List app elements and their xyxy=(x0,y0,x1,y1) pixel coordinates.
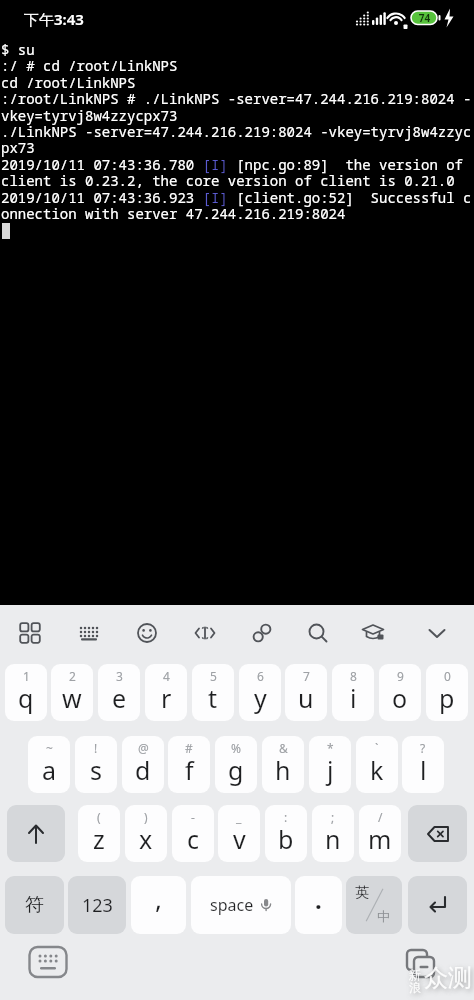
button[interactable] xyxy=(417,613,457,653)
staticText: l xyxy=(420,753,427,787)
staticText: w xyxy=(62,681,82,715)
button[interactable] xyxy=(185,613,225,653)
staticText: space xyxy=(210,894,254,916)
staticText: ! xyxy=(94,740,98,756)
staticText: 4 xyxy=(163,668,170,684)
button[interactable]: 1 xyxy=(5,664,47,721)
button[interactable]: ( xyxy=(78,805,120,862)
button[interactable]: ! xyxy=(75,736,117,793)
staticText: f xyxy=(185,753,194,787)
staticText: : xyxy=(284,809,288,825)
staticText: n xyxy=(325,822,341,856)
staticText: ( xyxy=(97,809,101,825)
staticText: $ su xyxy=(1,40,35,59)
staticText: 2 xyxy=(69,668,76,684)
button[interactable]: 3 xyxy=(98,664,140,721)
staticText: 下午3:43 xyxy=(24,9,84,29)
button[interactable] xyxy=(69,613,109,653)
staticText: 符 xyxy=(25,893,44,917)
staticText: s xyxy=(90,753,102,787)
staticText: 众测 xyxy=(424,963,472,993)
button[interactable]: 7 xyxy=(285,664,327,721)
button[interactable] xyxy=(408,876,467,934)
staticText: x xyxy=(139,822,153,856)
button[interactable] xyxy=(10,613,50,653)
button[interactable]: 2 xyxy=(51,664,93,721)
staticText: ? xyxy=(420,740,426,756)
staticText: · xyxy=(315,889,322,922)
staticText: m xyxy=(368,822,392,856)
button[interactable]: _ xyxy=(218,805,260,862)
staticText: 7 xyxy=(303,668,310,684)
staticText: * xyxy=(327,740,334,756)
button[interactable]: 0 xyxy=(426,664,468,721)
staticText: o xyxy=(392,681,408,715)
button[interactable] xyxy=(127,613,167,653)
button[interactable] xyxy=(28,945,68,979)
button[interactable]: @ xyxy=(122,736,164,793)
staticText: / xyxy=(378,809,383,825)
button[interactable]: space xyxy=(191,876,291,934)
staticText: v xyxy=(233,822,246,856)
button[interactable]: 符 xyxy=(5,876,64,934)
button[interactable] xyxy=(7,805,65,862)
staticText: 6 xyxy=(257,668,264,684)
staticText: :/ # cd /root/LinkNPS xyxy=(1,56,178,75)
staticText: ) xyxy=(144,809,148,825)
button[interactable] xyxy=(298,613,338,653)
button[interactable]: 5 xyxy=(192,664,234,721)
staticText: e xyxy=(112,681,127,715)
staticText: q xyxy=(18,681,34,715)
button[interactable]: ~ xyxy=(28,736,70,793)
button[interactable]: * xyxy=(309,736,351,793)
staticText: z xyxy=(93,822,105,856)
staticText: , xyxy=(155,881,162,916)
button[interactable]: ) xyxy=(125,805,167,862)
staticText: - xyxy=(191,809,195,825)
staticText: 新 xyxy=(409,967,421,982)
staticText: j xyxy=(327,753,334,787)
button[interactable]: : xyxy=(265,805,307,862)
button[interactable]: / xyxy=(359,805,401,862)
button[interactable]: # xyxy=(168,736,210,793)
button[interactable]: ` xyxy=(356,736,398,793)
button[interactable]: % xyxy=(215,736,257,793)
staticText: 2019/10/11 07:43:36.923 [I] [client.go:5… xyxy=(1,188,472,207)
button[interactable]: & xyxy=(262,736,304,793)
button[interactable]: 6 xyxy=(239,664,281,721)
staticText: @ xyxy=(138,740,149,756)
button[interactable] xyxy=(408,805,467,862)
button[interactable]: 英 xyxy=(346,876,402,934)
staticText: u xyxy=(298,681,314,715)
staticText: onnection with server 47.244.216.219:802… xyxy=(1,204,346,223)
staticText: cd /root/LinkNPS xyxy=(1,73,136,92)
button[interactable]: · xyxy=(295,876,342,934)
button[interactable]: 9 xyxy=(379,664,421,721)
staticText: 3 xyxy=(116,668,123,684)
staticText: vkey=tyrvj8w4zzycpx73 xyxy=(1,106,178,125)
staticText: a xyxy=(42,753,57,787)
staticText: r xyxy=(161,681,172,715)
staticText: 123 xyxy=(82,893,113,918)
staticText: 74 xyxy=(415,11,434,25)
button[interactable]: 123 xyxy=(68,876,126,934)
button[interactable] xyxy=(353,613,393,653)
staticText: 9 xyxy=(397,668,404,684)
button[interactable] xyxy=(242,613,282,653)
button[interactable]: 4 xyxy=(145,664,187,721)
staticText: c xyxy=(187,822,200,856)
staticText: k xyxy=(370,753,384,787)
staticText: i xyxy=(350,681,357,715)
staticText: 中 xyxy=(377,908,390,924)
button[interactable]: - xyxy=(172,805,214,862)
button[interactable]: 8 xyxy=(332,664,374,721)
staticText: ; xyxy=(331,809,335,825)
staticText: d xyxy=(135,753,151,787)
button[interactable]: ; xyxy=(312,805,354,862)
button[interactable] xyxy=(403,948,443,984)
button[interactable]: ? xyxy=(402,736,444,793)
button[interactable]: , xyxy=(131,876,186,934)
staticText: 2019/10/11 07:43:36.780 [I] [npc.go:89] … xyxy=(1,155,472,174)
staticText: :/root/LinkNPS # ./LinkNPS -server=47.24… xyxy=(1,89,472,108)
staticText: px73 xyxy=(1,138,35,157)
